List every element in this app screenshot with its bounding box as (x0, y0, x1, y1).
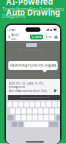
button[interactable]: Key (13, 102, 18, 107)
button[interactable]: Key (27, 108, 32, 114)
staticText: Share (45, 35, 52, 39)
button[interactable]: Sketch Doc (8, 33, 19, 41)
staticText: Draw (35, 35, 42, 39)
staticText: 9:41 (9, 28, 16, 31)
button[interactable]: Key (56, 115, 62, 120)
button[interactable]: Key (7, 115, 13, 120)
button[interactable]: Key (52, 102, 57, 107)
button[interactable]: Key (12, 122, 18, 127)
button[interactable]: Key (10, 108, 15, 114)
button[interactable]: Key (44, 108, 48, 114)
staticText: Add the ice game to the protagonist (9, 82, 44, 89)
button[interactable]: Key (35, 102, 40, 107)
button[interactable]: Key (49, 115, 54, 120)
button[interactable]: Key (16, 108, 20, 114)
button[interactable]: Key (58, 102, 62, 107)
staticText: Transform Key Points into Diagrams (10, 64, 56, 67)
button[interactable]: Draw (30, 34, 43, 39)
button[interactable]: Key (21, 115, 26, 120)
button[interactable]: Key (21, 108, 26, 114)
button[interactable]: Key (24, 102, 29, 107)
button[interactable]: Key (41, 102, 46, 107)
button[interactable]: Key (38, 108, 43, 114)
button[interactable]: Key (33, 108, 37, 114)
staticText: Transform Key Points into Diagrams (2, 5, 64, 20)
button[interactable]: Key (27, 115, 32, 120)
button[interactable]: Send (54, 89, 57, 92)
button[interactable]: Share (45, 35, 52, 39)
button[interactable]: Key (7, 102, 12, 107)
button[interactable]: Key (38, 115, 43, 120)
staticText: AI-Powered Auto Drawing (6, 0, 60, 18)
staticText: and draw a connection line. (9, 89, 48, 93)
button[interactable]: Key (49, 108, 54, 114)
button[interactable]: Home (54, 35, 58, 39)
button[interactable]: Key (55, 108, 60, 114)
staticText: Sketch Doc (11, 33, 19, 41)
